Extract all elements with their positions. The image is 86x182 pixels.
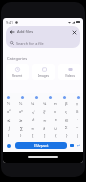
button[interactable]: ∪ [50, 124, 61, 132]
staticText: { [55, 133, 57, 139]
staticText: x² [7, 109, 11, 115]
staticText: ∂ [43, 126, 46, 131]
staticText: ≤ [7, 118, 11, 123]
button[interactable]: { [50, 132, 61, 140]
staticText: ∈ [65, 118, 69, 123]
staticText: ( [8, 133, 10, 139]
staticText: Recent [12, 74, 23, 78]
staticText: ⅓ [19, 101, 23, 107]
button[interactable]: − [72, 124, 83, 132]
staticText: Ελληνικά [34, 143, 49, 148]
button[interactable]: ε [50, 116, 61, 124]
staticText: ∪ [54, 126, 58, 131]
staticText: ) [20, 133, 22, 139]
staticText: δ [76, 109, 79, 115]
button[interactable]: π [50, 100, 61, 108]
staticText: ¼ [31, 101, 35, 107]
staticText: ε [55, 117, 57, 123]
staticText: ½ [7, 101, 11, 107]
staticText: Search for a file [16, 41, 44, 46]
staticText: Images [38, 74, 50, 78]
staticText: ∫ [8, 126, 11, 131]
button[interactable]: ] [39, 132, 50, 140]
button[interactable]: ≠ [27, 116, 39, 124]
staticText: · [77, 117, 79, 123]
staticText: ≥ [19, 118, 23, 123]
button[interactable]: ( [3, 132, 15, 140]
button[interactable]: Toolbar 5 [75, 94, 81, 100]
button[interactable]: ≥ [15, 116, 27, 124]
staticText: π [54, 101, 57, 107]
button[interactable]: ≈ [39, 116, 50, 124]
button[interactable]: γ [72, 100, 83, 108]
staticText: Videos [65, 74, 75, 78]
button[interactable]: Enter [75, 142, 82, 149]
staticText: ≠ [32, 117, 35, 123]
button[interactable]: Search for a file [7, 38, 79, 48]
staticText: ≈ [43, 118, 47, 123]
staticText: [ [32, 133, 34, 139]
staticText: | [76, 133, 79, 139]
button[interactable]: ⅓ [15, 100, 27, 108]
button[interactable]: ς [61, 108, 72, 116]
button[interactable]: ) [15, 132, 27, 140]
button[interactable]: Close [70, 28, 78, 36]
staticText: 9:41 [6, 20, 14, 25]
button[interactable]: √ [27, 108, 39, 116]
staticText: √ [32, 110, 35, 115]
button[interactable]: ∞ [27, 124, 39, 132]
button[interactable]: } [61, 132, 72, 140]
button[interactable]: Ελληνικά [15, 142, 67, 149]
button[interactable]: Toolbar 0 [5, 94, 11, 100]
button[interactable]: ≤ [3, 116, 15, 124]
button[interactable]: ∛ [39, 108, 50, 116]
staticText: Categories [7, 56, 28, 61]
button[interactable]: ¾ [39, 100, 50, 108]
button[interactable]: | [72, 132, 83, 140]
button[interactable]: ∈ [61, 116, 72, 124]
button[interactable]: ½ [3, 100, 15, 108]
button[interactable]: Images [32, 64, 55, 80]
button[interactable]: ∑ [15, 124, 27, 132]
staticText: ∑ [20, 126, 23, 131]
button[interactable]: Back [8, 28, 16, 36]
staticText: γ [76, 101, 79, 107]
staticText: ¾ [43, 101, 47, 107]
button[interactable]: ¼ [27, 100, 39, 108]
staticText: ν [54, 109, 57, 115]
button[interactable]: Recent [6, 64, 29, 80]
button[interactable]: Σ [61, 124, 72, 132]
staticText: Add files [17, 29, 34, 34]
button[interactable]: ∂ [39, 124, 50, 132]
staticText: ] [44, 133, 46, 139]
button[interactable]: ν [50, 108, 61, 116]
button[interactable]: Toolbar 4 [61, 94, 67, 100]
button[interactable]: Comma [69, 142, 75, 149]
button[interactable]: β [61, 100, 72, 108]
staticText: xⁿ [19, 109, 23, 115]
staticText: ↵ [77, 143, 81, 148]
button[interactable]: ∫ [3, 124, 15, 132]
staticText: β [65, 101, 68, 107]
staticText: ς [65, 109, 68, 115]
button[interactable]: Toolbar 1 [19, 94, 25, 100]
staticText: − [76, 125, 79, 131]
staticText: } [66, 133, 68, 139]
staticText: ∞ [31, 126, 35, 131]
button[interactable]: xⁿ [15, 108, 27, 116]
button[interactable]: [ [27, 132, 39, 140]
button[interactable]: x² [3, 108, 15, 116]
staticText: ∛ [43, 110, 46, 115]
staticText: Σ [65, 125, 68, 131]
button[interactable]: Toolbar 3 [47, 94, 53, 100]
button[interactable]: δ [72, 108, 83, 116]
button[interactable]: Emoji [4, 142, 13, 149]
button[interactable]: Toolbar 2 [33, 94, 39, 100]
button[interactable]: Videos [58, 64, 81, 80]
